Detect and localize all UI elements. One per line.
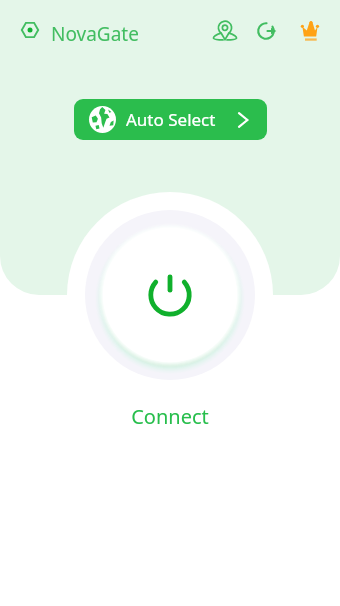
staticText: NovaGate [51, 21, 139, 47]
button[interactable]: Connect [65, 190, 275, 400]
staticText: Auto Select [126, 108, 216, 131]
button[interactable]: Premium [294, 15, 327, 48]
button[interactable]: Disconnect [250, 14, 283, 47]
button[interactable]: NovaGate [17, 18, 141, 44]
button[interactable]: Locations [208, 14, 241, 47]
staticText: Connect [131, 403, 209, 430]
button[interactable]: Auto Select [74, 99, 267, 140]
